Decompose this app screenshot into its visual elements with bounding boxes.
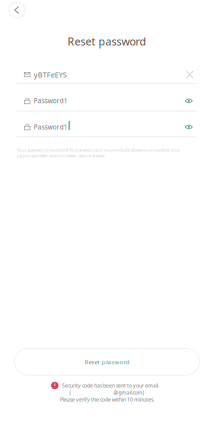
staticText: ( @gmail.com) [69, 389, 144, 396]
staticText: Please verify the code within 10 minutes… [60, 396, 154, 403]
button[interactable]: Reset password [14, 348, 199, 375]
staticText: Your password must be 8-15 characters an… [17, 147, 179, 158]
staticText: Password1 [34, 96, 68, 105]
staticText: Password1 [34, 123, 68, 131]
staticText: Reset password [84, 358, 129, 366]
button[interactable]: Show confirm password [185, 124, 197, 129]
staticText: yBTFeEYS [34, 70, 67, 79]
staticText: Security code has been sent to your emai… [62, 382, 159, 389]
button[interactable]: Clear email [186, 71, 197, 78]
button[interactable]: Back [7, 0, 27, 20]
button[interactable]: Show password [185, 98, 197, 103]
staticText: Reset password [67, 34, 146, 48]
